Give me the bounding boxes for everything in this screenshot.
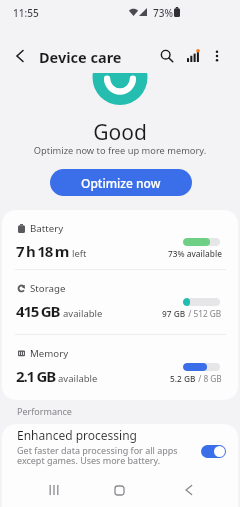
- button[interactable]: Search: [155, 44, 179, 68]
- staticText: Device care: [39, 47, 122, 67]
- staticText: Good: [0, 118, 240, 147]
- staticText: 415 GB: [16, 301, 60, 321]
- button[interactable]: Memory: [2, 335, 238, 400]
- button[interactable]: Home: [107, 478, 131, 502]
- staticText: Optimize now to free up more memory.: [0, 144, 240, 157]
- staticText: 2.1 GB: [16, 366, 55, 386]
- staticText: 7 h 18 m: [16, 241, 69, 261]
- staticText: 73%: [153, 6, 173, 20]
- staticText: Storage: [30, 282, 66, 295]
- button[interactable]: Battery: [2, 210, 238, 269]
- staticText: available: [58, 372, 98, 385]
- staticText: / 512 GB: [186, 308, 222, 319]
- staticText: 97 GB: [162, 308, 186, 319]
- staticText: Memory: [30, 347, 69, 360]
- staticText: 73% available: [168, 248, 222, 259]
- button[interactable]: Back: [176, 478, 200, 502]
- button[interactable]: Storage: [2, 270, 238, 334]
- button[interactable]: Enhanced processing: [2, 424, 238, 474]
- staticText: left: [72, 247, 87, 260]
- staticText: 5.2 GB: [170, 373, 196, 384]
- button[interactable]: Usage statistics: [181, 44, 205, 68]
- button[interactable]: More options: [205, 44, 229, 68]
- staticText: Optimize now: [81, 175, 161, 191]
- button[interactable]: Navigate up: [8, 44, 32, 68]
- staticText: available: [63, 307, 103, 320]
- staticText: 11:55: [13, 6, 39, 20]
- staticText: Get faster data processing for all apps …: [17, 444, 179, 466]
- staticText: Enhanced processing: [17, 427, 137, 443]
- button[interactable]: Optimize now: [50, 169, 192, 196]
- button[interactable]: Recent apps: [42, 478, 66, 502]
- staticText: Battery: [30, 222, 64, 235]
- staticText: Performance: [17, 405, 72, 417]
- staticText: / 8 GB: [196, 373, 222, 384]
